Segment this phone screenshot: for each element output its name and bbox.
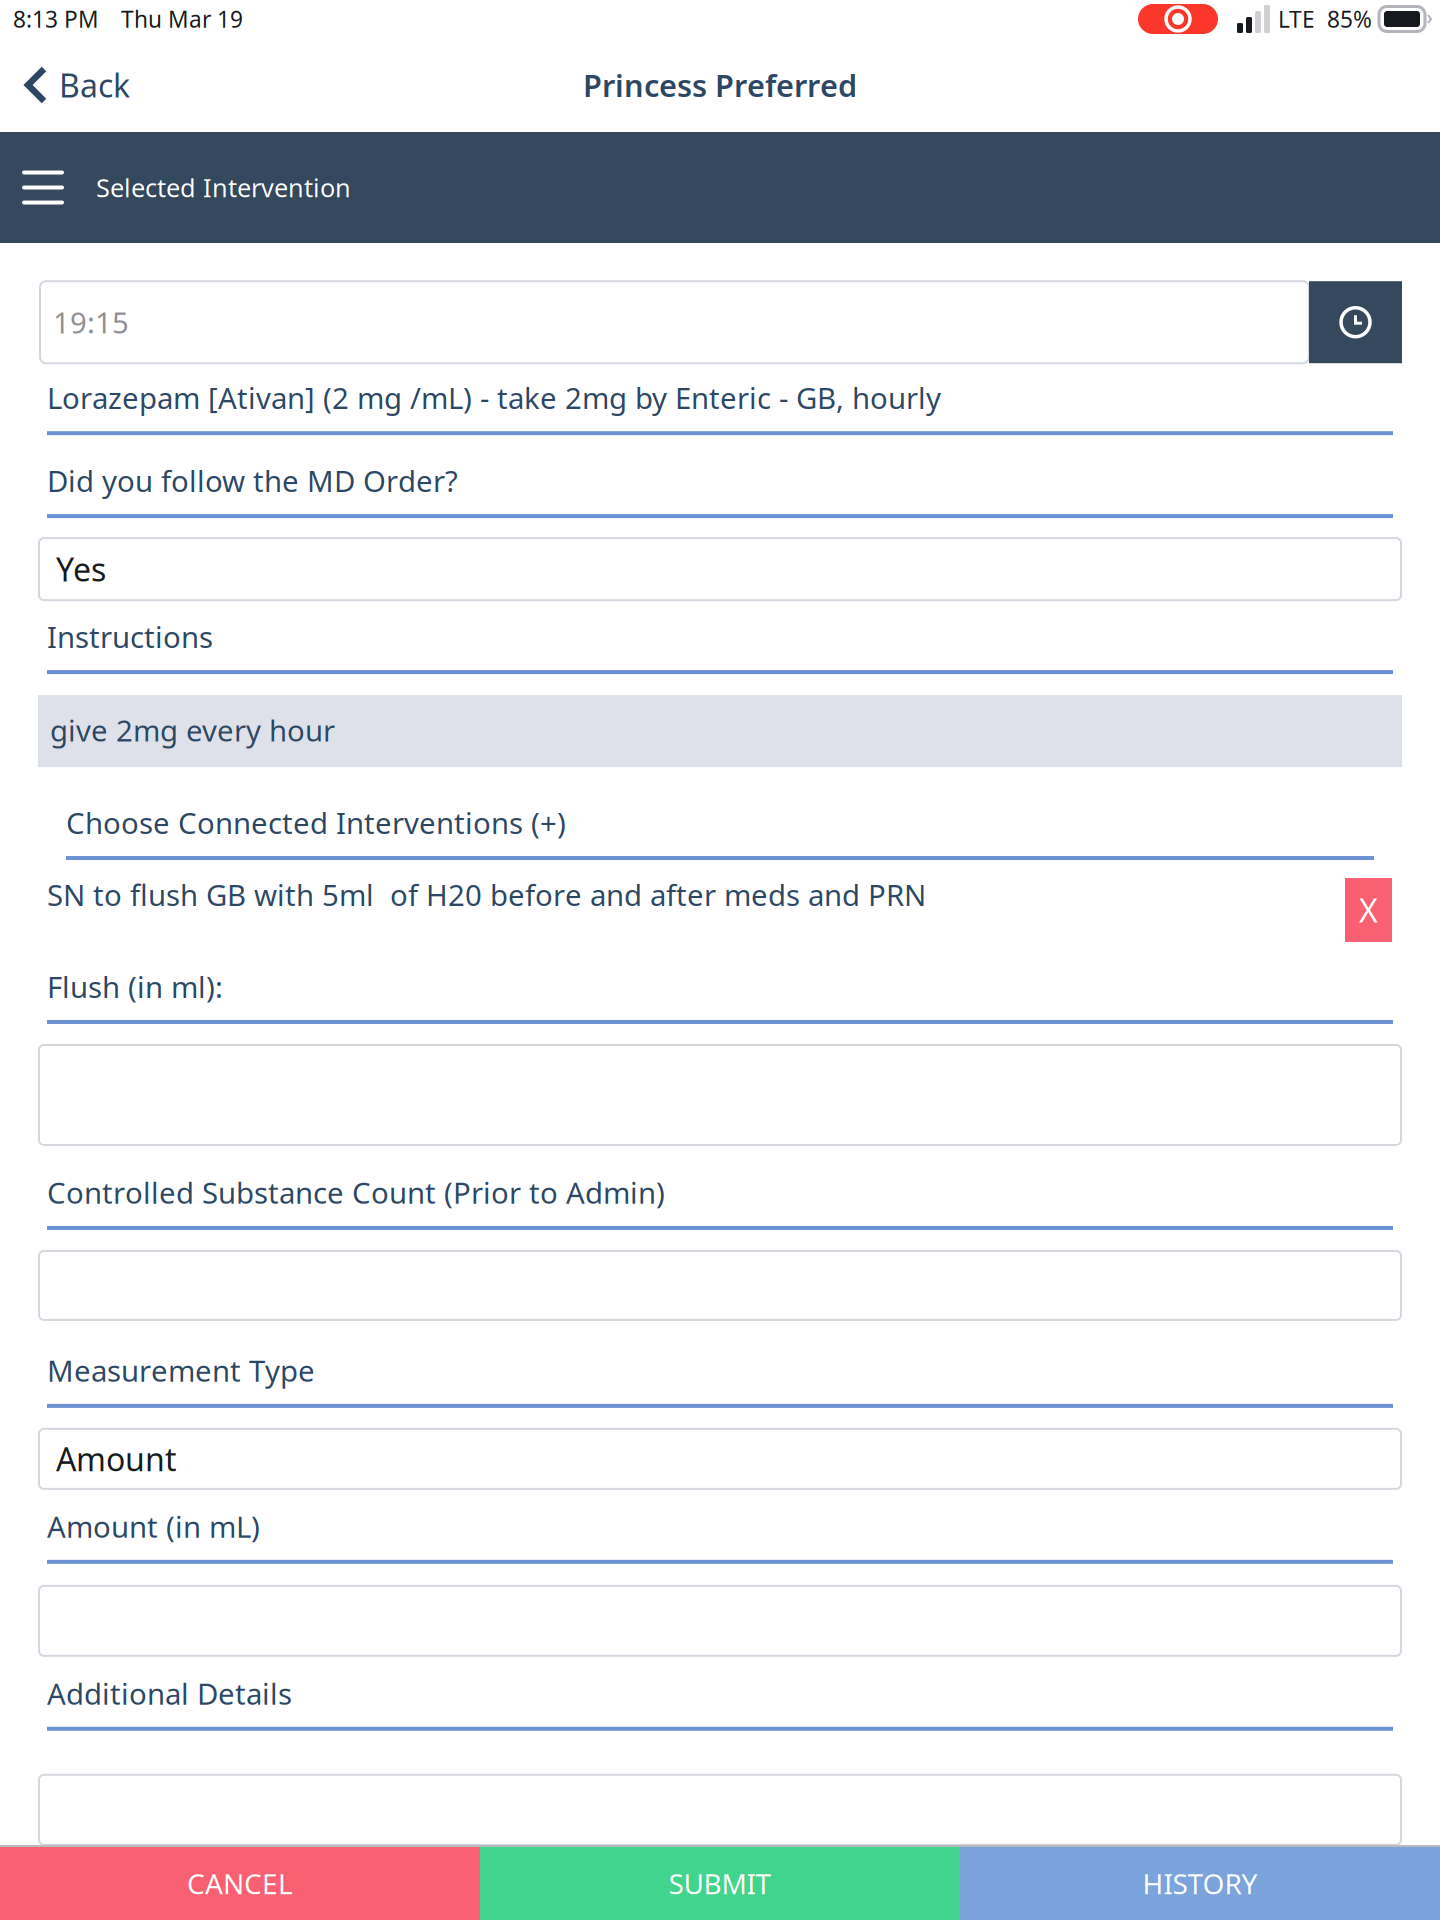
button[interactable]: Amount [0, 1429, 1440, 1489]
staticText: X [1359, 889, 1378, 931]
staticText: Back [59, 64, 130, 106]
staticText: Instructions [47, 617, 213, 656]
staticText: Amount [56, 1438, 177, 1480]
staticText: Controlled Substance Count (Prior to Adm… [47, 1173, 665, 1212]
button[interactable]: CANCEL [0, 1847, 480, 1920]
staticText: Amount (in mL) [47, 1507, 260, 1546]
staticText: HISTORY [1142, 1865, 1257, 1902]
staticText: Thu Mar 19 [121, 4, 243, 34]
staticText: 85% [1327, 4, 1372, 34]
staticText: CANCEL [187, 1865, 293, 1902]
button[interactable]: Menu [0, 132, 96, 243]
staticText: Princess Preferred [583, 65, 857, 105]
staticText: Did you follow the MD Order? [47, 461, 458, 500]
staticText: Additional Details [47, 1674, 292, 1713]
staticText: 19:15 [53, 303, 129, 342]
button[interactable]: HISTORY [960, 1847, 1440, 1920]
staticText: give 2mg every hour [50, 711, 335, 750]
staticText: Flush (in ml): [47, 967, 223, 1006]
staticText: 8:13 PM [13, 4, 99, 34]
staticText: Measurement Type [47, 1351, 315, 1390]
button[interactable]: Back [0, 38, 150, 132]
button[interactable]: Choose Connected Interventions (+) [0, 803, 1440, 860]
button[interactable]: SUBMIT [480, 1847, 960, 1920]
staticText: Selected Intervention [96, 171, 351, 204]
staticText: Lorazepam [Ativan] (2 mg /mL) - take 2mg… [47, 378, 941, 417]
button[interactable]: Remove intervention [1345, 878, 1392, 942]
button[interactable]: Pick time [1309, 281, 1402, 363]
button[interactable]: Yes [0, 538, 1440, 600]
staticText: Choose Connected Interventions (+) [66, 803, 566, 842]
staticText: SN to flush GB with 5ml of H20 before an… [47, 875, 926, 914]
staticText: Yes [56, 548, 106, 590]
staticText: SUBMIT [668, 1865, 771, 1902]
staticText: LTE [1278, 4, 1315, 34]
